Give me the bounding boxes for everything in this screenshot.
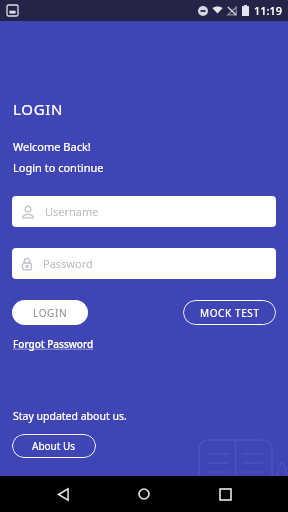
staticText: Forgot Password — [13, 337, 94, 351]
staticText: Username — [45, 204, 99, 219]
staticText: MOCK TEST — [200, 306, 260, 320]
button[interactable]: MOCK TEST — [183, 300, 276, 325]
button[interactable]: LOGIN — [12, 300, 88, 325]
staticText: 11:19 — [254, 3, 283, 18]
button[interactable]: Username — [12, 196, 276, 227]
button[interactable]: Recent apps — [207, 476, 243, 512]
button[interactable]: About Us — [12, 434, 96, 458]
button[interactable]: Home — [126, 476, 162, 512]
button[interactable]: Back — [45, 476, 81, 512]
staticText: Welcome Back! — [13, 139, 91, 154]
staticText: LOGIN — [13, 99, 64, 119]
button[interactable]: Password — [12, 248, 276, 279]
button[interactable]: Forgot Password — [13, 337, 94, 351]
staticText: Password — [43, 256, 93, 271]
staticText: LOGIN — [33, 306, 68, 320]
staticText: About Us — [32, 439, 76, 453]
staticText: Stay updated about us. — [13, 409, 127, 423]
staticText: Login to continue — [13, 160, 104, 175]
